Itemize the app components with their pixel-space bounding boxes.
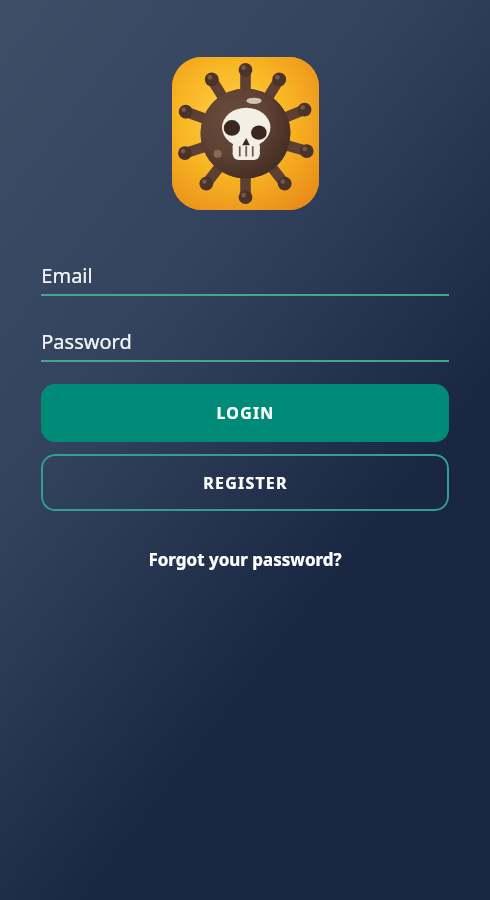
- staticText: Email: [41, 262, 93, 289]
- button[interactable]: Password: [41, 322, 449, 362]
- staticText: Forgot your password?: [148, 548, 342, 571]
- button[interactable]: LOGIN: [41, 384, 449, 442]
- button[interactable]: REGISTER: [41, 454, 449, 511]
- button[interactable]: Email: [41, 256, 449, 296]
- staticText: REGISTER: [203, 472, 288, 494]
- staticText: LOGIN: [216, 402, 275, 424]
- staticText: Password: [41, 328, 132, 355]
- button[interactable]: Forgot your password?: [134, 540, 356, 579]
